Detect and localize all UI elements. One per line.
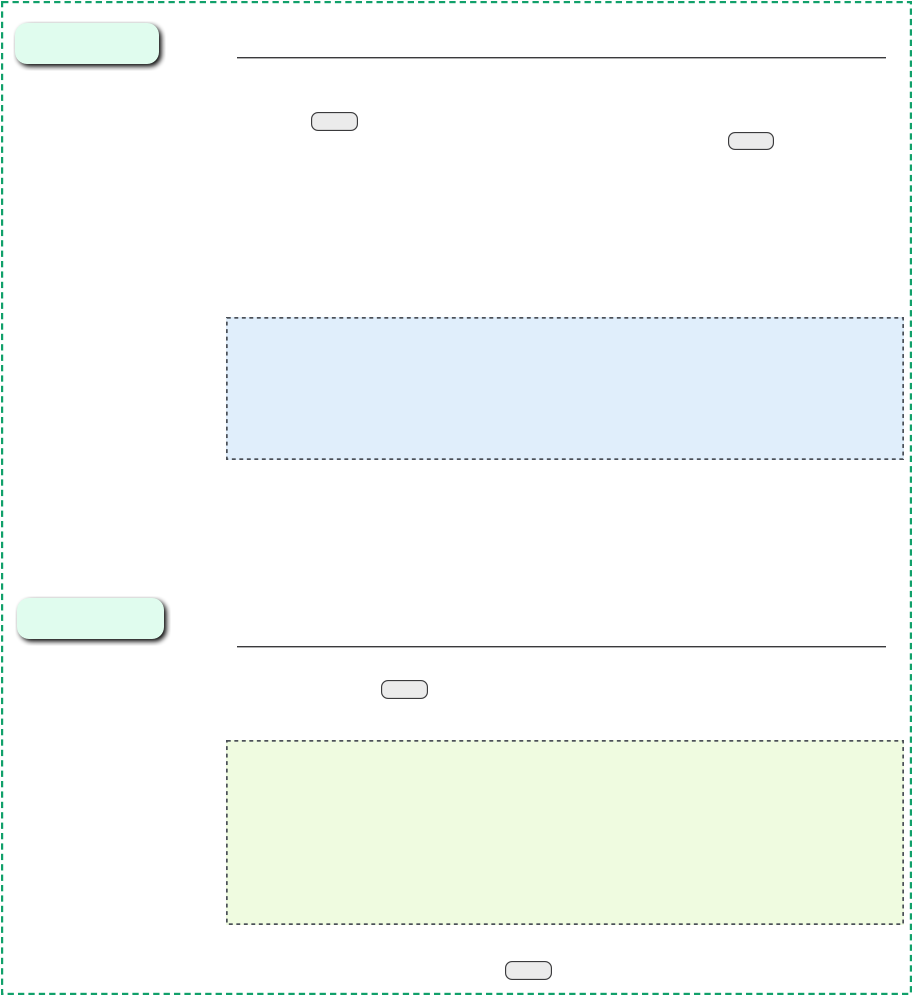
button[interactable]: Section two [17, 598, 164, 639]
button[interactable]: Tag two [728, 132, 774, 150]
button[interactable]: Tag one [311, 112, 358, 131]
button[interactable]: Tag three [381, 680, 428, 699]
button[interactable]: Section one [15, 23, 159, 64]
button[interactable]: Tag four [505, 961, 552, 980]
